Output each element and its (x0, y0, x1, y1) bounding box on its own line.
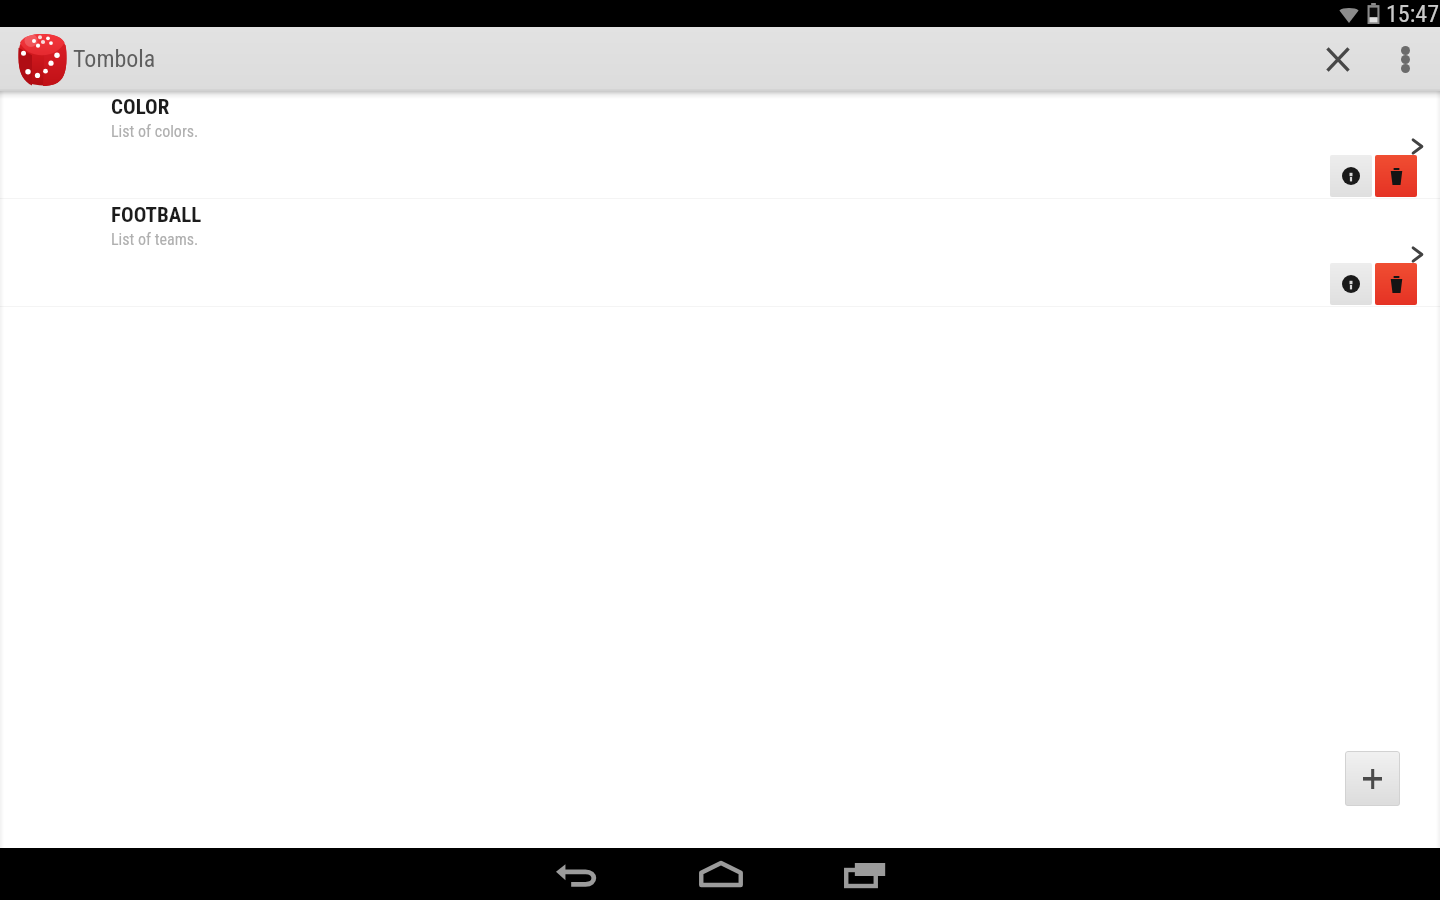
staticText: FOOTBALL (111, 203, 202, 228)
button[interactable]: Recents (826, 848, 905, 900)
button[interactable]: More options (1372, 27, 1438, 91)
staticText: List of colors. (111, 122, 199, 141)
button[interactable]: Close (1304, 27, 1372, 91)
button[interactable]: Info (1330, 263, 1372, 305)
button[interactable]: FOOTBALL (0, 199, 1440, 306)
button[interactable]: Delete (1375, 155, 1417, 197)
staticText: COLOR (111, 95, 170, 120)
button[interactable]: Info (1330, 155, 1372, 197)
button[interactable]: COLOR (0, 91, 1440, 198)
button[interactable]: Add (1345, 751, 1400, 806)
button[interactable]: Back (537, 848, 616, 900)
button[interactable]: Home (681, 848, 760, 900)
staticText: List of teams. (111, 230, 199, 249)
button[interactable]: Delete (1375, 263, 1417, 305)
staticText: 15:47 (1386, 0, 1439, 27)
staticText: Tombola (73, 45, 156, 73)
